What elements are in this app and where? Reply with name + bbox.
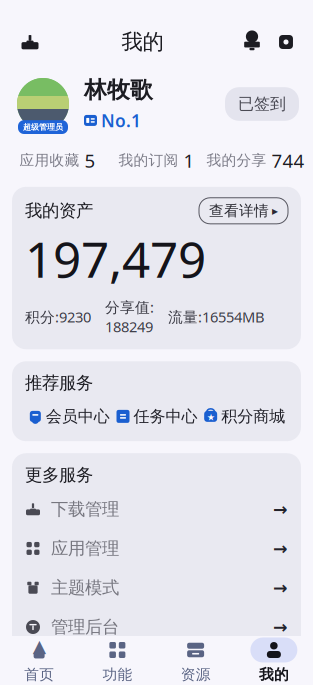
button[interactable]: 通知 <box>235 22 269 62</box>
button[interactable]: 我的分享 <box>206 144 305 177</box>
staticText: 更多服务 <box>25 464 93 485</box>
staticText: 超级管理员 <box>23 122 63 132</box>
staticText: → <box>273 656 288 676</box>
staticText: 主题模式 <box>51 577 119 598</box>
staticText: 分享值:188249 <box>105 297 154 336</box>
staticText: ★ <box>207 412 215 423</box>
staticText: 197,479 <box>25 226 206 291</box>
button[interactable]: 会员中心 <box>25 405 113 428</box>
button[interactable]: 功能 <box>78 633 156 685</box>
staticText: 推荐服务 <box>25 372 93 394</box>
button[interactable]: 我的订阅 <box>107 144 206 177</box>
staticText: 帮助与反馈 <box>51 656 136 677</box>
button[interactable]: ▲ <box>0 633 78 685</box>
staticText: 已签到 <box>238 94 286 114</box>
staticText: → <box>273 617 288 637</box>
staticText: → <box>273 578 288 598</box>
staticText: 积分商城 <box>221 407 285 426</box>
staticText: ? <box>30 657 36 675</box>
button[interactable]: 已签到 <box>225 87 299 121</box>
button[interactable]: 下载 <box>10 22 50 62</box>
staticText: 5 <box>84 148 95 173</box>
staticText: 我的 <box>259 665 289 683</box>
staticText: → <box>273 539 288 558</box>
staticText: 下载管理 <box>51 498 119 520</box>
button[interactable]: 设置 <box>269 22 303 62</box>
staticText: 任务中心 <box>133 407 197 426</box>
button[interactable]: 下载管理 <box>25 489 288 529</box>
staticText: → <box>273 499 288 519</box>
staticText: 首页 <box>24 665 54 683</box>
staticText: 应用管理 <box>51 538 119 559</box>
button[interactable]: 应用收藏 <box>8 144 107 177</box>
button[interactable]: 管理后台 <box>25 607 288 647</box>
staticText: 资源 <box>181 665 211 683</box>
button[interactable]: 任务中心 <box>113 405 200 428</box>
staticText: 林牧歌 <box>84 76 153 104</box>
staticText: 积分:9230 <box>25 307 91 327</box>
button[interactable]: ★ <box>200 405 288 428</box>
staticText: 1 <box>183 148 194 173</box>
staticText: ▲ <box>33 636 46 656</box>
staticText: 功能 <box>102 665 132 683</box>
button[interactable]: 应用管理 <box>25 529 288 568</box>
staticText: 我的分享 <box>206 151 266 169</box>
staticText: 流量:16554MB <box>168 307 265 327</box>
staticText: 我的资产 <box>25 200 93 221</box>
button[interactable]: 查看详情 <box>199 198 288 224</box>
staticText: 我的订阅 <box>118 151 178 169</box>
staticText: 应用收藏 <box>19 151 79 169</box>
staticText: 管理后台 <box>51 616 119 638</box>
staticText: 我的 <box>121 29 163 55</box>
staticText: 744 <box>271 148 304 173</box>
staticText: 查看详情 <box>209 202 269 220</box>
staticText: No.1 <box>101 109 141 132</box>
staticText: ▸ <box>272 204 278 218</box>
button[interactable]: ? <box>25 647 288 685</box>
button[interactable]: 主题模式 <box>25 568 288 607</box>
button[interactable]: 我的 <box>235 633 313 685</box>
button[interactable]: 资源 <box>156 633 235 685</box>
staticText: 会员中心 <box>46 407 110 426</box>
